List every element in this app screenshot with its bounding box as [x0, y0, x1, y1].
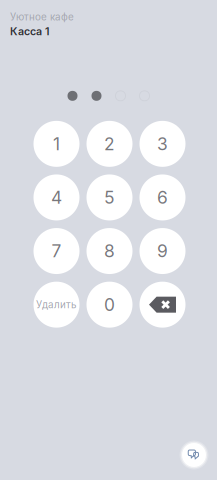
- staticText: Удалить: [36, 299, 77, 311]
- button[interactable]: 9: [139, 228, 185, 274]
- button[interactable]: 1: [33, 121, 79, 167]
- button[interactable]: 0: [86, 282, 132, 328]
- staticText: Уютное кафе: [10, 11, 74, 23]
- staticText: 0: [104, 294, 115, 315]
- button[interactable]: 8: [86, 228, 132, 274]
- button[interactable]: 2: [86, 121, 132, 167]
- staticText: 7: [51, 241, 61, 262]
- staticText: 8: [104, 241, 115, 262]
- button[interactable]: 7: [33, 228, 79, 274]
- staticText: 4: [51, 187, 62, 208]
- button[interactable]: [139, 282, 185, 328]
- button[interactable]: 6: [139, 174, 185, 220]
- button[interactable]: 4: [33, 174, 79, 220]
- staticText: 3: [157, 133, 168, 154]
- staticText: 9: [157, 241, 168, 262]
- staticText: 2: [104, 133, 115, 154]
- button[interactable]: Chat: [179, 440, 209, 470]
- button[interactable]: 5: [86, 174, 132, 220]
- staticText: 1: [53, 133, 60, 154]
- staticText: Касса 1: [10, 25, 50, 38]
- button[interactable]: Удалить: [33, 282, 79, 328]
- staticText: 5: [104, 187, 115, 208]
- staticText: 6: [157, 187, 168, 208]
- button[interactable]: 3: [139, 121, 185, 167]
